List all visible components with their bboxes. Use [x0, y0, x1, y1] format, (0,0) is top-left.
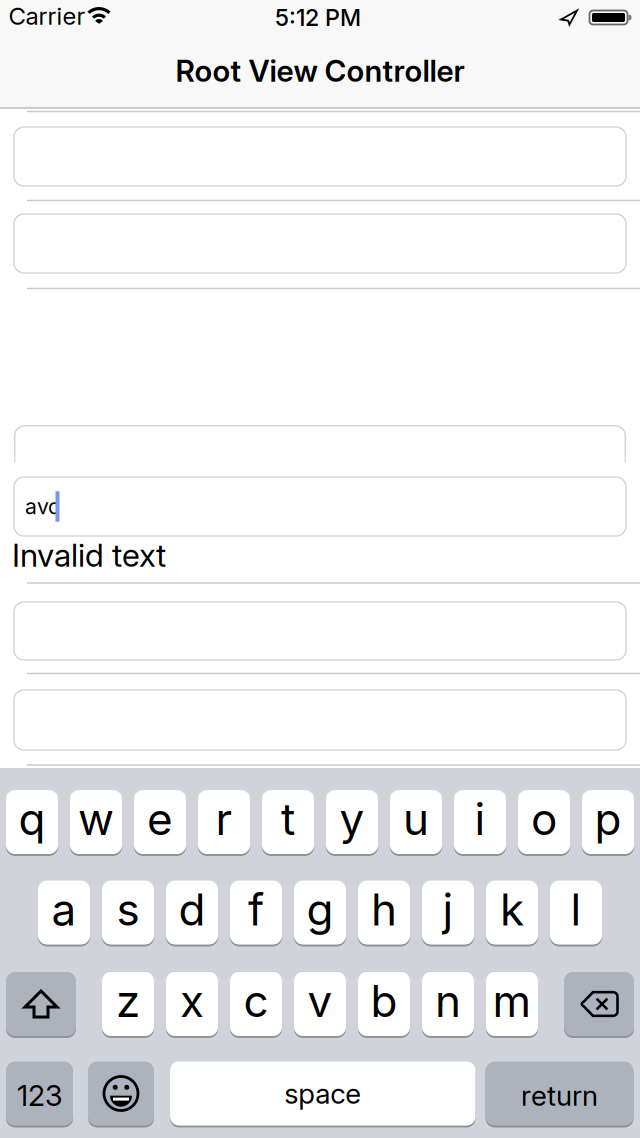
- staticText: 5:12 PM: [275, 3, 361, 32]
- button[interactable]: o: [518, 789, 570, 855]
- button[interactable]: e: [134, 789, 186, 855]
- button[interactable]: i: [454, 789, 506, 855]
- button[interactable]: Emoji: [88, 1060, 154, 1126]
- button[interactable]: k: [486, 879, 538, 945]
- staticText: Invalid text: [12, 536, 166, 574]
- staticText: s: [116, 883, 139, 936]
- staticText: y: [339, 792, 364, 846]
- button[interactable]: y: [326, 789, 378, 855]
- button[interactable]: h: [358, 879, 410, 945]
- button[interactable]: a: [38, 879, 90, 945]
- button[interactable]: d: [166, 879, 218, 945]
- staticText: u: [403, 792, 429, 846]
- staticText: w: [78, 792, 114, 846]
- button[interactable]: Text field: [14, 127, 626, 186]
- staticText: h: [371, 883, 397, 936]
- button[interactable]: c: [230, 971, 282, 1037]
- staticText: z: [116, 974, 140, 1028]
- staticText: 123: [17, 1078, 62, 1113]
- staticText: v: [307, 974, 332, 1028]
- button[interactable]: b: [358, 971, 410, 1037]
- button[interactable]: Delete: [564, 971, 634, 1037]
- staticText: c: [243, 974, 268, 1028]
- staticText: return: [521, 1079, 598, 1112]
- button[interactable]: z: [102, 971, 154, 1037]
- button[interactable]: Text field: [14, 690, 626, 750]
- button[interactable]: l: [550, 879, 602, 945]
- staticText: p: [594, 792, 621, 846]
- button[interactable]: q: [6, 789, 58, 855]
- staticText: k: [500, 883, 524, 936]
- staticText: avc: [25, 494, 60, 519]
- button[interactable]: x: [166, 971, 218, 1037]
- button[interactable]: Text field: [14, 214, 626, 273]
- staticText: f: [248, 883, 264, 936]
- staticText: n: [435, 974, 461, 1028]
- button[interactable]: p: [582, 789, 634, 855]
- staticText: space: [284, 1077, 361, 1110]
- staticText: Carrier: [8, 1, 85, 30]
- staticText: o: [531, 792, 557, 846]
- staticText: j: [442, 883, 453, 936]
- button[interactable]: r: [198, 789, 250, 855]
- staticText: t: [281, 792, 295, 846]
- staticText: x: [180, 974, 204, 1028]
- button[interactable]: Text field, avc: [14, 477, 626, 536]
- staticText: a: [51, 883, 76, 936]
- staticText: g: [306, 883, 333, 936]
- staticText: q: [18, 792, 45, 846]
- button[interactable]: Text field: [14, 602, 626, 660]
- staticText: i: [474, 792, 485, 846]
- staticText: d: [178, 883, 205, 936]
- button[interactable]: Text field: [14, 425, 626, 462]
- staticText: b: [370, 974, 397, 1028]
- button[interactable]: m: [486, 971, 538, 1037]
- staticText: l: [570, 883, 581, 936]
- staticText: Root View Controller: [175, 53, 464, 89]
- button[interactable]: v: [294, 971, 346, 1037]
- button[interactable]: w: [70, 789, 122, 855]
- button[interactable]: s: [102, 879, 154, 945]
- button[interactable]: n: [422, 971, 474, 1037]
- button[interactable]: j: [422, 879, 474, 945]
- button[interactable]: g: [294, 879, 346, 945]
- button[interactable]: t: [262, 789, 314, 855]
- staticText: m: [492, 974, 531, 1028]
- button[interactable]: Shift: [6, 971, 76, 1037]
- button[interactable]: f: [230, 879, 282, 945]
- button[interactable]: u: [390, 789, 442, 855]
- button[interactable]: space: [170, 1060, 475, 1126]
- button[interactable]: 123: [6, 1060, 73, 1126]
- staticText: e: [147, 792, 173, 846]
- staticText: r: [215, 792, 232, 846]
- button[interactable]: return: [485, 1060, 633, 1126]
